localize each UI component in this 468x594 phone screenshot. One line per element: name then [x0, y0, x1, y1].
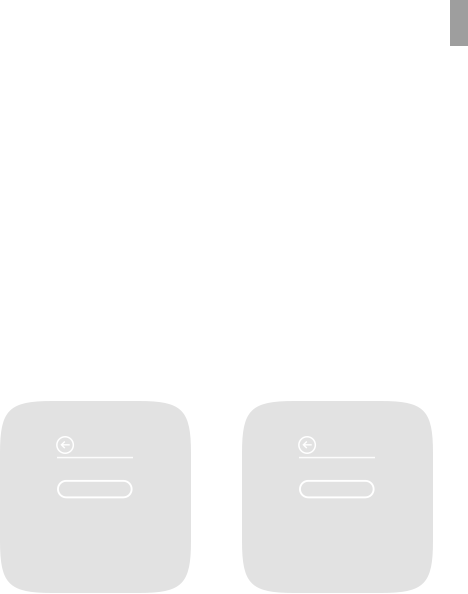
- button[interactable]: [242, 401, 433, 593]
- button[interactable]: [0, 401, 191, 593]
